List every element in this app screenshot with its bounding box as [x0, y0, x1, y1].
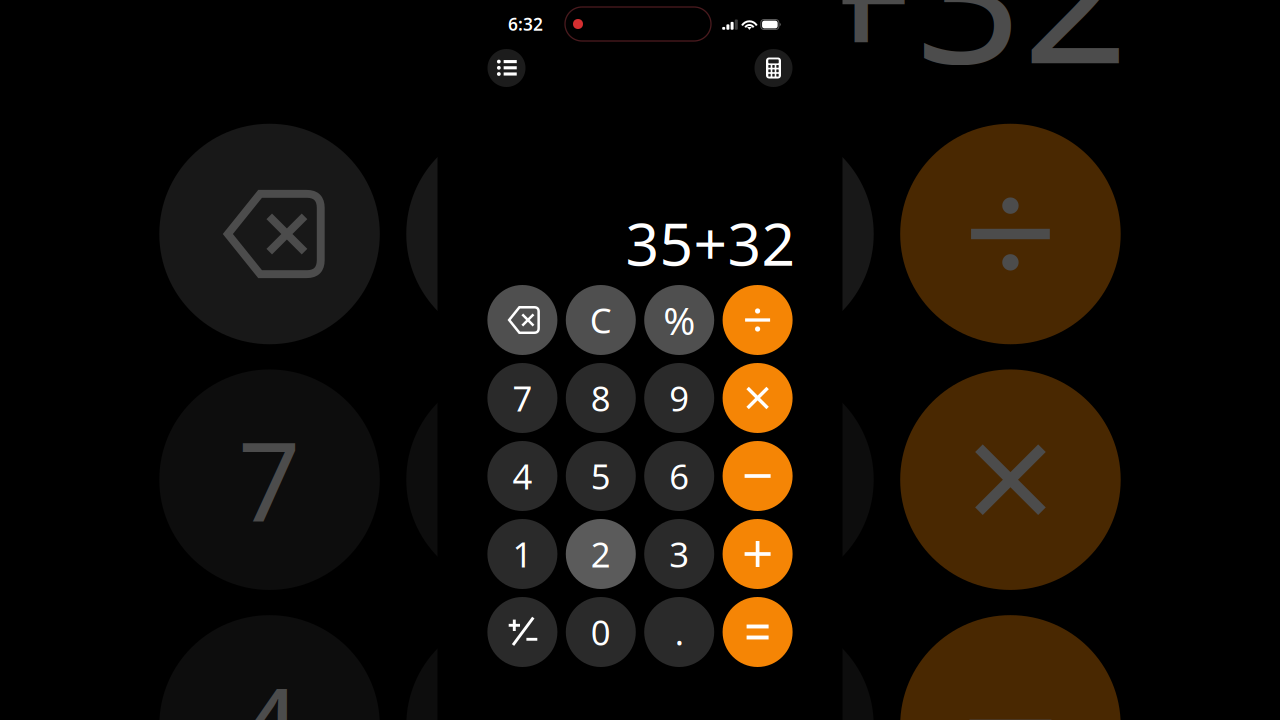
button[interactable]: Percent [644, 285, 714, 355]
button[interactable]: Equals [723, 597, 793, 667]
button[interactable]: 4 [487, 441, 557, 511]
staticText: 6:32 [508, 12, 543, 35]
staticText: . [675, 609, 684, 655]
staticText: 1 [512, 531, 532, 577]
button[interactable]: Multiply [723, 363, 793, 433]
button[interactable]: History [487, 49, 525, 87]
staticText: 9 [669, 375, 689, 421]
button[interactable]: Subtract [723, 441, 793, 511]
staticText: % [663, 294, 695, 346]
button[interactable]: 1 [487, 519, 557, 589]
staticText: 5 [591, 453, 611, 499]
staticText: 8 [591, 375, 611, 421]
staticText: 2 [591, 531, 611, 577]
button[interactable]: Percent [644, 285, 714, 355]
button[interactable]: 0 [566, 597, 636, 667]
button[interactable]: 7 [487, 363, 557, 433]
button[interactable]: Add [723, 519, 793, 589]
button[interactable]: Subtract [723, 441, 793, 511]
button[interactable]: History [487, 49, 525, 87]
staticText: 6:32 [508, 12, 543, 35]
button[interactable]: Divide [723, 285, 793, 355]
staticText: 1 [512, 531, 532, 577]
button[interactable]: Add [723, 519, 793, 589]
button[interactable]: 9 [644, 363, 714, 433]
staticText: 4 [512, 453, 532, 499]
staticText: 9 [669, 375, 689, 421]
button[interactable]: 0 [566, 597, 636, 667]
button[interactable]: 6 [644, 441, 714, 511]
button[interactable]: Divide [723, 285, 793, 355]
button[interactable]: 2 [566, 519, 636, 589]
button[interactable]: 4 [487, 441, 557, 511]
button[interactable]: 6 [644, 441, 714, 511]
staticText: 3 [669, 531, 689, 577]
button[interactable]: Decimal point [644, 597, 714, 667]
button[interactable]: 8 [566, 363, 636, 433]
staticText: 4 [512, 453, 532, 499]
staticText: 35+32 [625, 204, 795, 282]
staticText: 5 [591, 453, 611, 499]
staticText: 6 [669, 453, 689, 499]
button[interactable]: Toggle sign [487, 597, 557, 667]
staticText: 7 [512, 375, 532, 421]
button[interactable]: Delete [487, 285, 557, 355]
button[interactable]: 5 [566, 441, 636, 511]
staticText: 3 [669, 531, 689, 577]
staticText: % [663, 294, 695, 346]
staticText: C [590, 297, 612, 343]
staticText: 2 [591, 531, 611, 577]
staticText: . [675, 609, 684, 655]
button[interactable]: 9 [644, 363, 714, 433]
button[interactable]: Clear [566, 285, 636, 355]
button[interactable]: 7 [487, 363, 557, 433]
staticText: 35+32 [625, 204, 795, 282]
button[interactable]: 1 [487, 519, 557, 589]
button[interactable]: Toggle sign [487, 597, 557, 667]
staticText: 0 [591, 609, 611, 655]
button[interactable]: 5 [566, 441, 636, 511]
button[interactable]: Equals [723, 597, 793, 667]
staticText: 6 [669, 453, 689, 499]
button[interactable]: 2 [566, 519, 636, 589]
button[interactable]: 8 [566, 363, 636, 433]
staticText: C [590, 297, 612, 343]
button[interactable]: Decimal point [644, 597, 714, 667]
staticText: 8 [591, 375, 611, 421]
button[interactable]: Multiply [723, 363, 793, 433]
staticText: 7 [512, 375, 532, 421]
button[interactable]: Delete [487, 285, 557, 355]
button[interactable]: 3 [644, 519, 714, 589]
staticText: 0 [591, 609, 611, 655]
button[interactable]: Calculator mode [754, 49, 792, 87]
button[interactable]: Clear [566, 285, 636, 355]
button[interactable]: Calculator mode [754, 49, 792, 87]
button[interactable]: 3 [644, 519, 714, 589]
